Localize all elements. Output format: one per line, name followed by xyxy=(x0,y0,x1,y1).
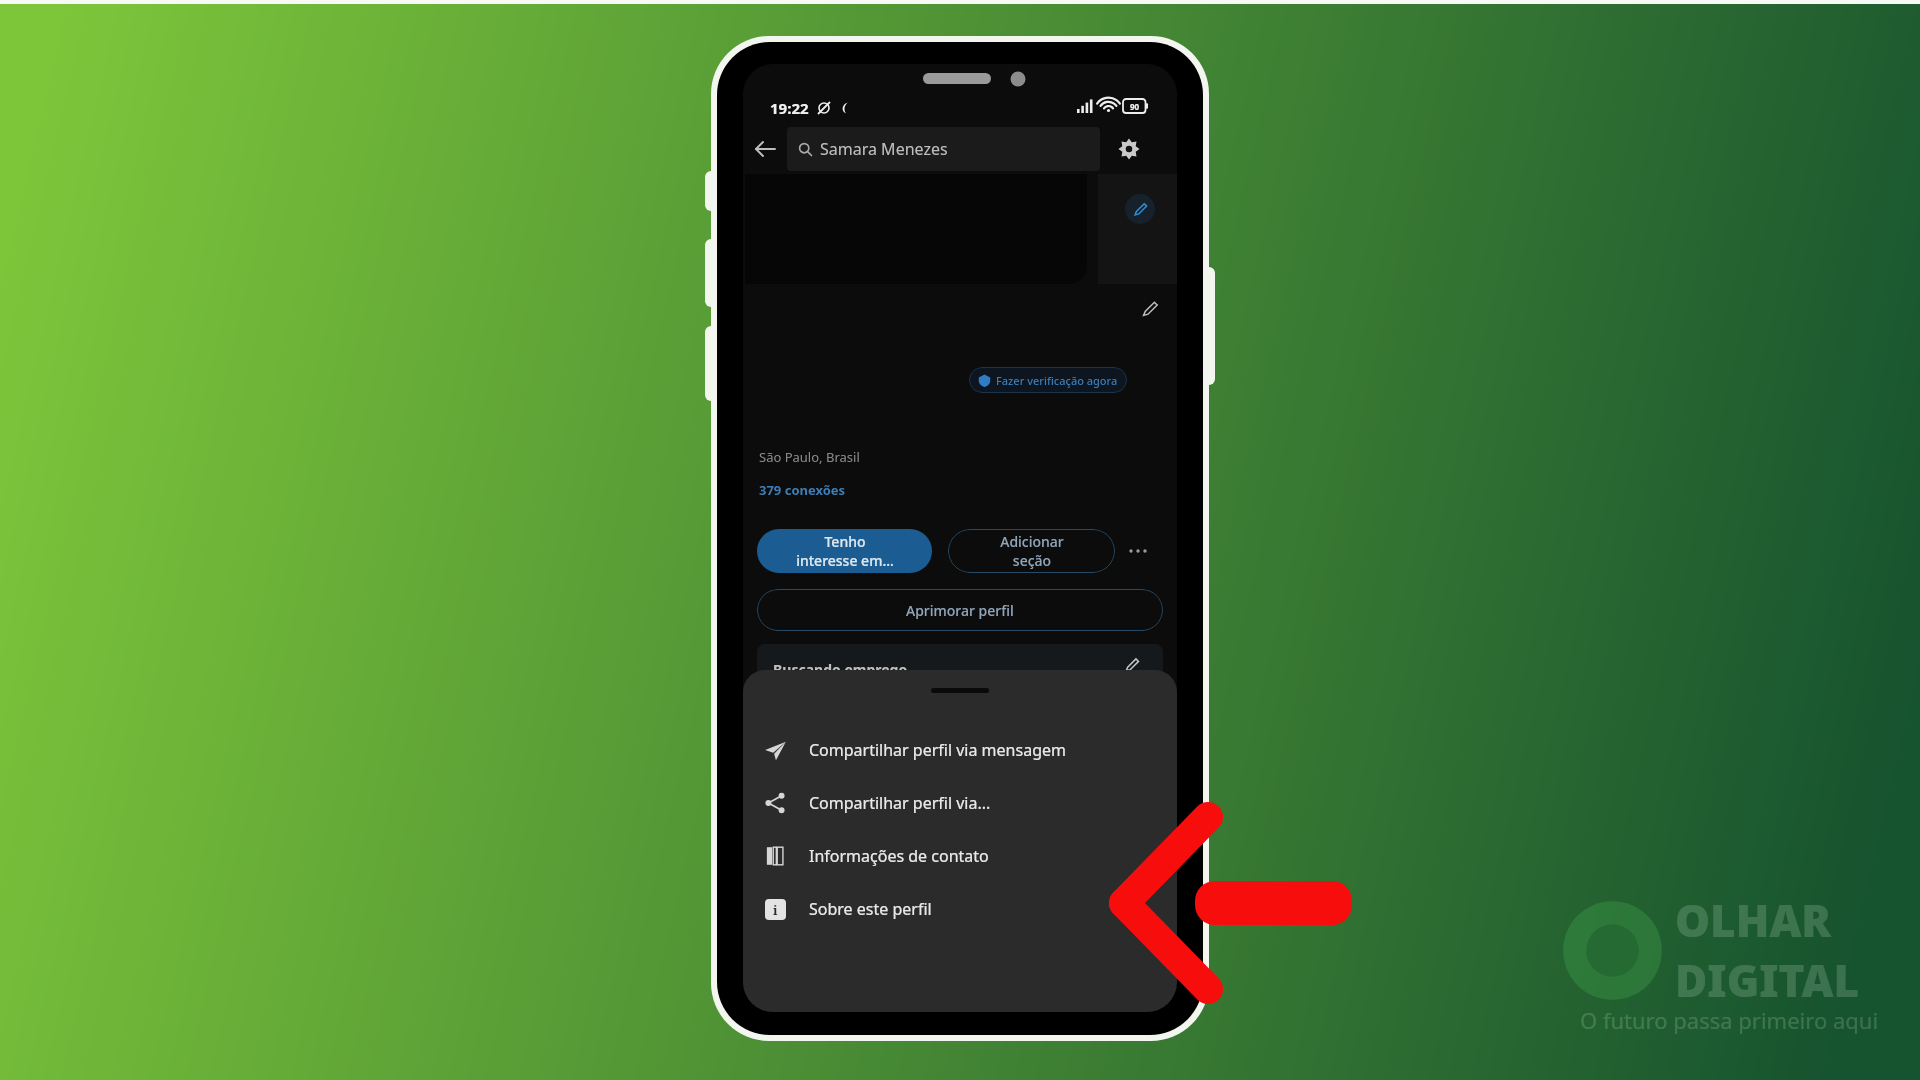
staticText: Sobre este perfil xyxy=(809,898,932,920)
staticText: 19:22 xyxy=(770,98,809,118)
staticText: Compartilhar perfil via... xyxy=(809,792,991,814)
staticText: Compartilhar perfil via mensagem xyxy=(809,739,1066,761)
staticText: São Paulo, Brasil xyxy=(759,448,860,466)
staticText: O futuro passa primeiro aqui xyxy=(1580,1005,1879,1035)
button[interactable]: Tenho interesse em... xyxy=(757,529,932,573)
button[interactable]: i xyxy=(743,882,1177,935)
button[interactable]: Configuracoes xyxy=(1109,129,1149,169)
button[interactable]: Compartilhar perfil via... xyxy=(743,776,1177,829)
button[interactable]: Mais opções xyxy=(1123,536,1153,566)
button[interactable]: Buscando emprego xyxy=(757,644,1163,704)
staticText: Adicionar seção xyxy=(1000,532,1064,570)
staticText: i xyxy=(773,901,778,919)
staticText: Tenho interesse em... xyxy=(796,532,894,570)
button[interactable]: Editar foto xyxy=(1125,194,1155,224)
staticText: Buscando emprego xyxy=(773,660,908,679)
staticText: Informações de contato xyxy=(809,845,989,867)
staticText: 90 xyxy=(1130,101,1140,112)
staticText: Aprimorar perfil xyxy=(906,601,1014,620)
staticText: DIGITAL xyxy=(1675,950,1860,1010)
button[interactable]: Fazer verificação agora xyxy=(969,367,1127,393)
button[interactable]: Voltar xyxy=(743,127,787,171)
button[interactable]: Compartilhar perfil via mensagem xyxy=(743,723,1177,776)
button[interactable]: Adicionar seção xyxy=(948,529,1115,573)
staticText: Samara Menezes xyxy=(820,138,948,160)
button[interactable]: 379 conexões xyxy=(759,481,846,499)
button[interactable]: Aprimorar perfil xyxy=(757,589,1163,631)
staticText: Fazer verificação agora xyxy=(996,373,1118,388)
button[interactable]: Informações de contato xyxy=(743,829,1177,882)
button[interactable]: Editar perfil xyxy=(1137,296,1163,322)
staticText: OLHAR xyxy=(1675,890,1832,950)
button[interactable]: Samara Menezes xyxy=(787,127,1100,171)
